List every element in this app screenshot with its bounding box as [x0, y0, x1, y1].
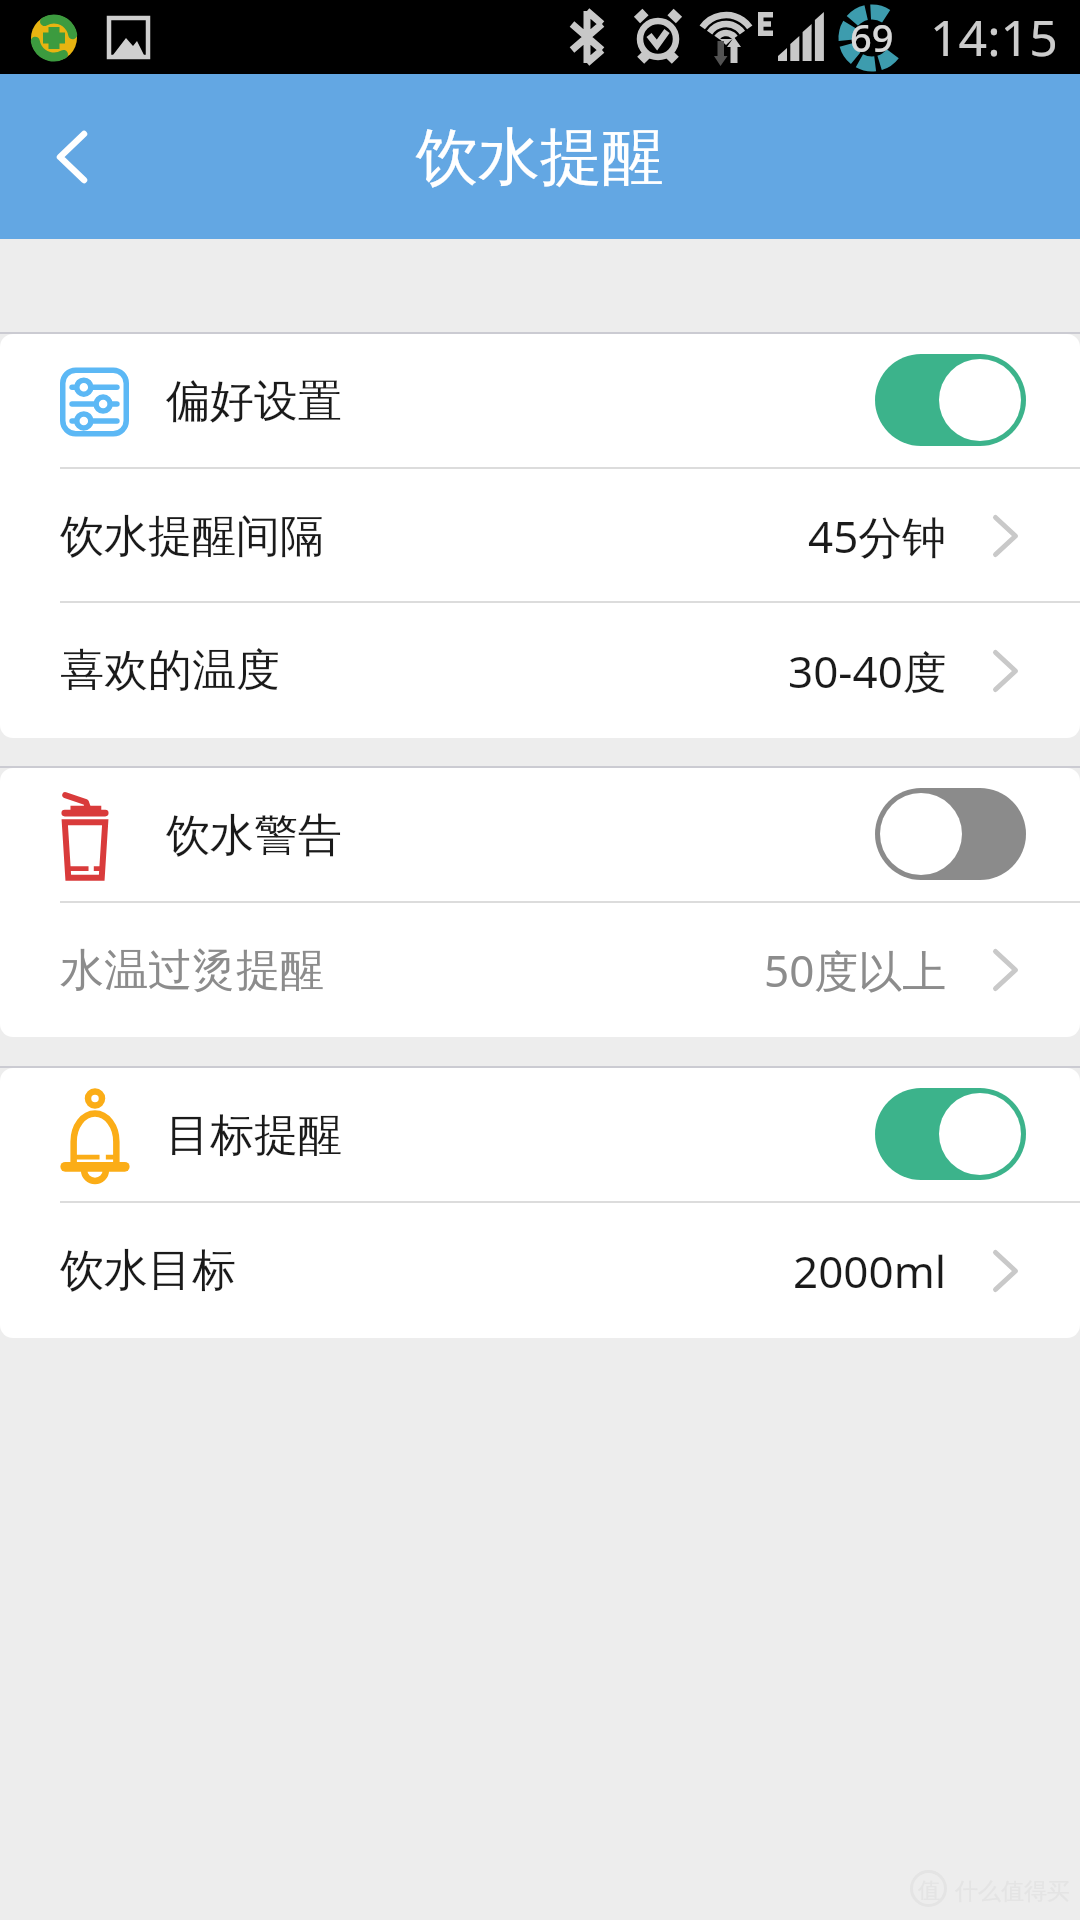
staticText: 45分钟 [808, 506, 947, 566]
staticText: 饮水目标 [60, 1243, 236, 1298]
staticText: 什么值得买 [955, 1877, 1070, 1906]
button[interactable]: 饮水目标 [0, 1203, 1080, 1338]
staticText: 水温过烫提醒 [60, 943, 324, 998]
button[interactable]: 饮水提醒间隔 [0, 469, 1080, 603]
button[interactable]: 水温过烫提醒 [0, 903, 1080, 1037]
staticText: 饮水提醒 [416, 118, 664, 196]
staticText: 喜欢的温度 [60, 643, 280, 698]
staticText: 饮水提醒间隔 [60, 509, 324, 564]
button[interactable]: 喜欢的温度 [0, 603, 1080, 738]
button[interactable]: 饮水警告 [0, 768, 1080, 903]
staticText: 50度以上 [764, 940, 947, 1000]
staticText: 69 [850, 11, 894, 63]
staticText: 偏好设置 [166, 374, 342, 429]
button[interactable]: 目标提醒 [0, 1068, 1080, 1203]
button[interactable]: Switch on [875, 1088, 1026, 1180]
staticText: 饮水警告 [166, 808, 342, 863]
button[interactable]: 偏好设置 [0, 334, 1080, 469]
button[interactable]: Switch off [875, 788, 1026, 880]
staticText: 14:15 [930, 3, 1058, 71]
button[interactable]: Switch on [875, 354, 1026, 446]
staticText: 值 [918, 1877, 940, 1900]
staticText: 30-40度 [788, 641, 947, 701]
staticText: 2000ml [793, 1241, 947, 1301]
staticText: 目标提醒 [166, 1108, 342, 1163]
button[interactable]: Back [0, 74, 144, 239]
